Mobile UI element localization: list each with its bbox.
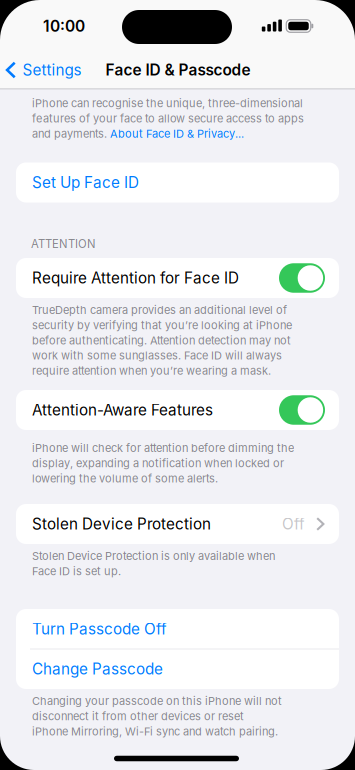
staticText: Require Attention for Face ID bbox=[32, 269, 239, 287]
button[interactable]: Turn Passcode Off bbox=[16, 609, 339, 649]
staticText: Settings bbox=[22, 61, 81, 79]
staticText: work with some sunglasses. Face ID will … bbox=[32, 349, 282, 362]
staticText: ATTENTION bbox=[31, 237, 96, 251]
staticText: display, expanding a notification when l… bbox=[32, 456, 284, 470]
staticText: 10:00 bbox=[43, 17, 85, 35]
button[interactable]: Change Passcode bbox=[16, 649, 339, 689]
staticText: before authenticating. Attention detecti… bbox=[32, 334, 291, 347]
staticText: Set Up Face ID bbox=[32, 173, 139, 192]
staticText: Face ID is set up. bbox=[32, 564, 121, 578]
staticText: features of your face to allow secure ac… bbox=[32, 112, 304, 125]
staticText: Attention-Aware Features bbox=[32, 401, 213, 419]
staticText: TrueDepth camera provides an additional … bbox=[32, 303, 287, 317]
staticText: Change Passcode bbox=[32, 660, 163, 678]
staticText: About Face ID & Privacy... bbox=[110, 127, 244, 140]
staticText: disconnect it from other devices or rese… bbox=[32, 709, 244, 723]
staticText: Face ID & Passcode bbox=[105, 61, 250, 79]
button[interactable]: Require Attention for Face ID bbox=[279, 263, 325, 293]
staticText: iPhone can recognise the unique, three-d… bbox=[32, 97, 303, 110]
staticText: security by verifying that you’re lookin… bbox=[32, 318, 292, 332]
staticText: and payments. bbox=[32, 127, 110, 140]
staticText: Stolen Device Protection is only availab… bbox=[32, 549, 275, 563]
staticText: Changing your passcode on this iPhone wi… bbox=[32, 694, 282, 708]
staticText: Off bbox=[282, 515, 305, 533]
button[interactable]: Stolen Device Protection bbox=[16, 504, 339, 544]
staticText: lowering the volume of some alerts. bbox=[32, 472, 218, 485]
staticText: Stolen Device Protection bbox=[32, 515, 211, 533]
staticText: iPhone Mirroring, Wi-Fi sync and watch p… bbox=[32, 725, 278, 738]
staticText: iPhone will check for attention before d… bbox=[32, 441, 294, 455]
button[interactable]: Back bbox=[5, 61, 81, 79]
button[interactable]: About Face ID & Privacy... bbox=[110, 127, 244, 140]
button[interactable]: Attention-Aware Features bbox=[279, 395, 325, 425]
button[interactable]: Set Up Face ID bbox=[16, 162, 339, 202]
staticText: require attention when you’re wearing a … bbox=[32, 364, 271, 377]
staticText: Turn Passcode Off bbox=[32, 620, 167, 638]
